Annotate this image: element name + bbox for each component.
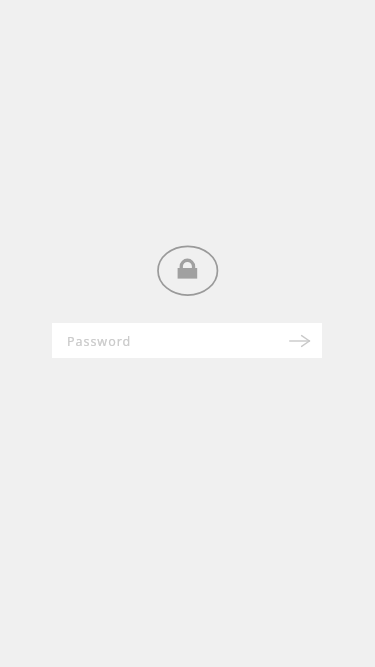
other: Locked bbox=[156, 245, 219, 296]
staticText: Password bbox=[67, 333, 132, 350]
button[interactable]: Submit password bbox=[286, 329, 310, 353]
button[interactable]: Password bbox=[52, 323, 322, 358]
